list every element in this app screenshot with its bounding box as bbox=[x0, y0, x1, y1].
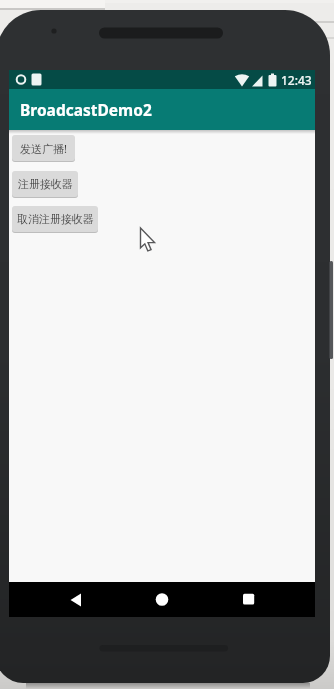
button[interactable] bbox=[142, 587, 182, 613]
staticText: 12:43 bbox=[281, 72, 312, 88]
button[interactable]: 发送广播! bbox=[12, 135, 75, 161]
button[interactable] bbox=[229, 587, 269, 613]
staticText: 发送广播! bbox=[20, 141, 67, 156]
button[interactable] bbox=[62, 587, 102, 613]
button[interactable]: 取消注册接收器 bbox=[12, 206, 98, 232]
staticText: BroadcastDemo2 bbox=[20, 99, 152, 120]
button[interactable]: 注册接收器 bbox=[12, 171, 78, 197]
staticText: 取消注册接收器 bbox=[17, 212, 94, 226]
staticText: 注册接收器 bbox=[18, 177, 73, 191]
